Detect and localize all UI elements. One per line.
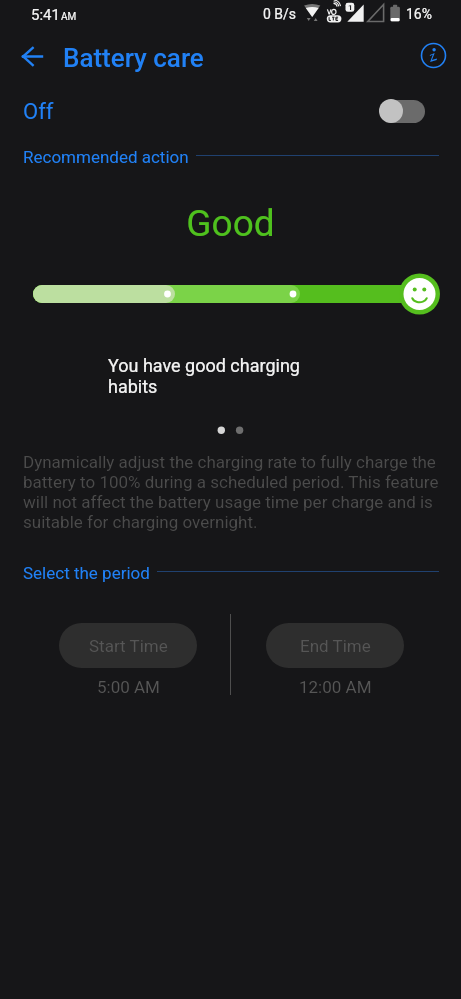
staticText: Good [0, 202, 461, 245]
staticText: Start Time [89, 636, 168, 656]
button[interactable]: End Time [266, 623, 404, 668]
staticText: Recommended action [23, 147, 189, 167]
staticText: 16% [406, 6, 432, 22]
staticText: 1 [348, 3, 353, 12]
staticText: 5:00 AM [97, 677, 160, 697]
staticText: Select the period [23, 563, 150, 583]
staticText: You have good charging habits [108, 355, 300, 398]
button[interactable]: Information [413, 35, 454, 76]
button[interactable]: Back [11, 35, 53, 77]
staticText: Dynamically adjust the charging rate to … [23, 452, 445, 532]
staticText: Off [23, 99, 54, 125]
staticText: AM [61, 11, 77, 23]
staticText: 12:00 AM [299, 677, 372, 697]
staticText: 0 B/s [263, 6, 297, 22]
staticText: 5:41 [31, 6, 60, 24]
staticText: Battery care [63, 43, 204, 73]
button[interactable]: Start Time [59, 623, 197, 668]
staticText: End Time [300, 636, 371, 656]
button[interactable]: Off [0, 90, 461, 134]
